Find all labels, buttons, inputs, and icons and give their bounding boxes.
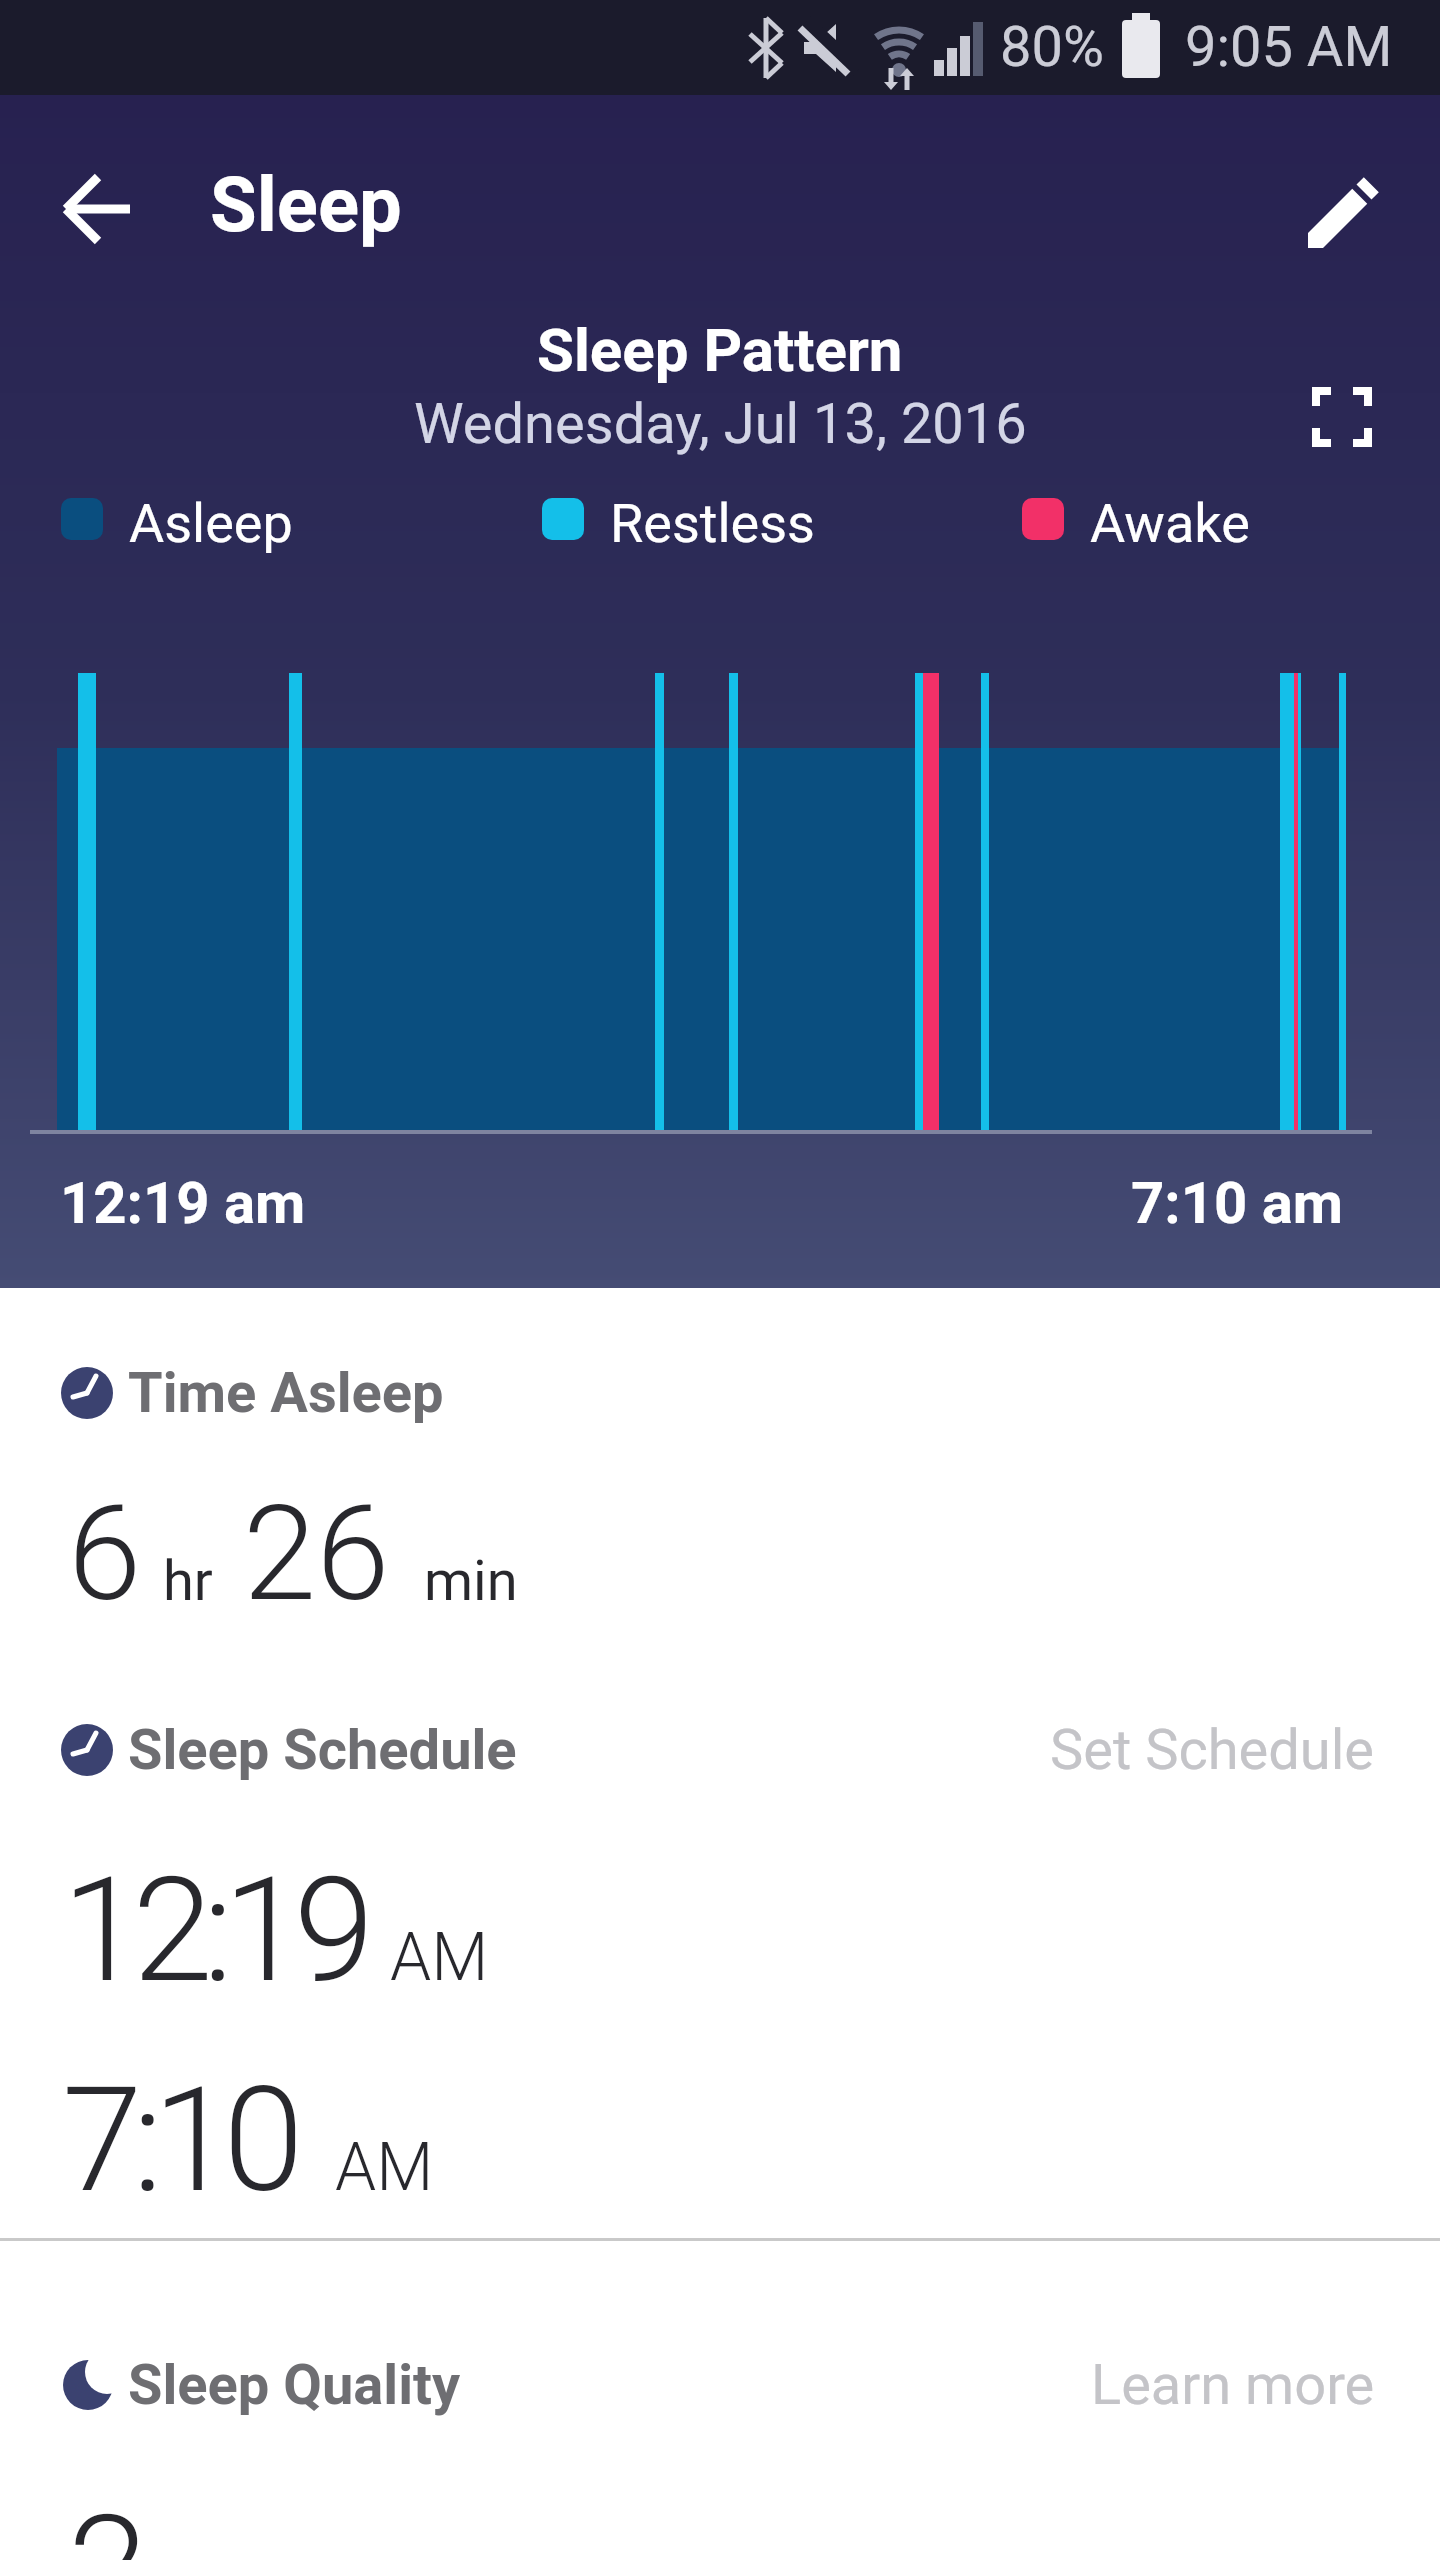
staticText: Awake bbox=[1090, 492, 1250, 555]
button[interactable]: Set Schedule bbox=[1050, 1717, 1375, 1783]
staticText: Restless bbox=[610, 492, 815, 555]
staticText: hr bbox=[163, 1548, 213, 1614]
staticText: 7:10 bbox=[62, 2055, 294, 2225]
button[interactable] bbox=[1290, 148, 1390, 248]
staticText: Sleep Pattern bbox=[537, 315, 903, 385]
staticText: 12:19 bbox=[62, 1845, 365, 2015]
staticText: 9:05 AM bbox=[1185, 14, 1393, 80]
staticText: 6 bbox=[68, 1477, 142, 1632]
staticText: 80% bbox=[1000, 14, 1104, 80]
staticText: Time Asleep bbox=[128, 1360, 444, 1426]
staticText: 2 bbox=[68, 2483, 149, 2560]
staticText: Sleep Quality bbox=[128, 2352, 461, 2418]
button[interactable] bbox=[1300, 375, 1386, 461]
staticText: 7:10 am bbox=[1131, 1169, 1343, 1237]
staticText: min bbox=[424, 1548, 518, 1614]
staticText: Sleep Schedule bbox=[128, 1717, 517, 1783]
staticText: Sleep bbox=[210, 160, 402, 249]
staticText: Asleep bbox=[129, 492, 293, 555]
button[interactable]: Learn more bbox=[1091, 2352, 1375, 2418]
staticText: 26 bbox=[243, 1477, 390, 1632]
staticText: Wednesday, Jul 13, 2016 bbox=[414, 391, 1027, 457]
button[interactable] bbox=[50, 165, 142, 257]
staticText: 12:19 am bbox=[60, 1169, 306, 1237]
staticText: AM bbox=[390, 1919, 489, 1996]
staticText: AM bbox=[335, 2129, 434, 2206]
